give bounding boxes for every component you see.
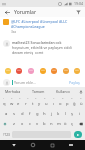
button[interactable]: s bbox=[10, 110, 18, 118]
staticText: 19:04 bbox=[74, 1, 83, 6]
staticText: ğ bbox=[73, 101, 76, 107]
button[interactable]: r bbox=[22, 100, 29, 108]
staticText: v bbox=[36, 121, 39, 127]
button[interactable]: m bbox=[55, 119, 62, 129]
staticText: i bbox=[79, 111, 81, 117]
staticText: y bbox=[38, 101, 41, 107]
staticText: a bbox=[5, 111, 8, 117]
button[interactable]: t bbox=[29, 100, 36, 108]
staticText: @LFC #Liverpool #Liverpool #LLC #Champio… bbox=[11, 19, 82, 29]
button[interactable]: Emoji bbox=[27, 67, 35, 75]
staticText: n bbox=[50, 121, 53, 127]
staticText: k bbox=[57, 111, 60, 117]
button[interactable]: p bbox=[64, 100, 71, 108]
button[interactable]: Merhaba bbox=[0, 87, 26, 96]
button[interactable]: Emoji bbox=[15, 67, 23, 75]
staticText: mailtest23 Sonuclarindan cok bbox=[12, 40, 62, 45]
button[interactable]: Backspace bbox=[76, 119, 85, 129]
button[interactable]: Back bbox=[9, 140, 19, 150]
button[interactable]: Emoji bbox=[50, 67, 58, 75]
button[interactable]: h bbox=[41, 110, 48, 118]
button[interactable]: ı bbox=[50, 100, 57, 108]
button[interactable]: Emoji bbox=[39, 67, 47, 75]
button[interactable]: k bbox=[55, 110, 62, 118]
button[interactable]: Keyboard bbox=[66, 140, 76, 150]
button[interactable]: u bbox=[43, 100, 50, 108]
staticText: u bbox=[45, 101, 48, 107]
staticText: t bbox=[32, 101, 34, 107]
button[interactable]: ?123 bbox=[1, 130, 11, 139]
button[interactable]: b bbox=[41, 119, 48, 129]
button[interactable]: g bbox=[34, 110, 41, 118]
button[interactable]: d bbox=[18, 110, 26, 118]
button[interactable]: Kullanıcı bbox=[51, 87, 76, 96]
button[interactable]: f bbox=[26, 110, 34, 118]
button[interactable]: Paylaş bbox=[67, 79, 82, 86]
button[interactable]: v bbox=[34, 119, 41, 129]
button[interactable]: Recents bbox=[47, 140, 57, 150]
staticText: 7 bbox=[53, 96, 55, 99]
button[interactable]: Emoji bbox=[73, 67, 81, 75]
staticText: 9 bbox=[71, 96, 73, 99]
staticText: ı bbox=[53, 101, 55, 107]
staticText: hoşnutum, etkinlik ve paylaşım ciddi bbox=[12, 45, 72, 50]
staticText: ç bbox=[71, 121, 74, 127]
staticText: ş bbox=[71, 111, 74, 117]
button[interactable]: Home bbox=[28, 140, 38, 150]
button[interactable]: Emoji bbox=[4, 67, 12, 75]
staticText: 8 bbox=[62, 96, 64, 99]
button[interactable]: z bbox=[10, 119, 18, 129]
button[interactable]: ö bbox=[62, 119, 69, 129]
staticText: e bbox=[17, 101, 20, 107]
staticText: 2 bbox=[11, 96, 13, 99]
button[interactable]: x bbox=[18, 119, 26, 129]
button[interactable]: Send bbox=[73, 131, 83, 138]
staticText: d bbox=[21, 111, 24, 117]
button[interactable]: ğ bbox=[71, 100, 78, 108]
button[interactable]: e bbox=[15, 100, 22, 108]
staticText: s bbox=[13, 111, 16, 117]
staticText: f bbox=[29, 111, 31, 117]
button[interactable]: Tamam bbox=[26, 87, 51, 96]
staticText: 3 bbox=[19, 96, 21, 99]
staticText: 5 bbox=[35, 96, 37, 99]
button[interactable]: i bbox=[76, 110, 83, 118]
button[interactable]: o bbox=[57, 100, 64, 108]
button[interactable]: Emoji bbox=[62, 67, 70, 75]
button[interactable]: ü bbox=[78, 100, 85, 108]
staticText: 3sa bbox=[11, 30, 17, 34]
staticText: j bbox=[51, 111, 53, 117]
button[interactable]: mailtest23 Sonuclarindan cok bbox=[0, 38, 85, 57]
staticText: ?123 bbox=[3, 133, 10, 137]
staticText: z bbox=[13, 121, 15, 127]
button[interactable]: Filter bbox=[74, 8, 82, 16]
staticText: 6 bbox=[44, 96, 46, 99]
staticText: 0 bbox=[80, 96, 82, 99]
button[interactable]: l bbox=[62, 110, 69, 118]
button[interactable]: Yorum ekle... bbox=[12, 80, 67, 85]
button[interactable]: @LFC #Liverpool #Liverpool #LLC #Champio… bbox=[0, 17, 85, 36]
button[interactable]: Back bbox=[3, 8, 11, 16]
button[interactable]: ç bbox=[69, 119, 76, 129]
staticText: Tamam bbox=[32, 89, 45, 94]
staticText: 4 bbox=[27, 96, 29, 99]
button[interactable]: a bbox=[2, 110, 10, 118]
staticText: devam etmiş comt bbox=[12, 50, 44, 55]
button[interactable]: Shift bbox=[0, 119, 10, 129]
staticText: r bbox=[25, 101, 27, 107]
button[interactable]: q bbox=[0, 100, 8, 108]
button[interactable]: Voice input bbox=[76, 87, 85, 96]
button[interactable]: w bbox=[8, 100, 15, 108]
staticText: o bbox=[59, 101, 62, 107]
staticText: g bbox=[36, 111, 39, 117]
staticText: ü bbox=[80, 101, 83, 107]
button[interactable]: n bbox=[48, 119, 55, 129]
button[interactable]: ş bbox=[69, 110, 76, 118]
staticText: h bbox=[43, 111, 46, 117]
button[interactable]: j bbox=[48, 110, 55, 118]
button[interactable]: c bbox=[26, 119, 34, 129]
staticText: q bbox=[3, 101, 6, 107]
staticText: ö bbox=[64, 121, 67, 127]
button[interactable]: y bbox=[36, 100, 43, 108]
